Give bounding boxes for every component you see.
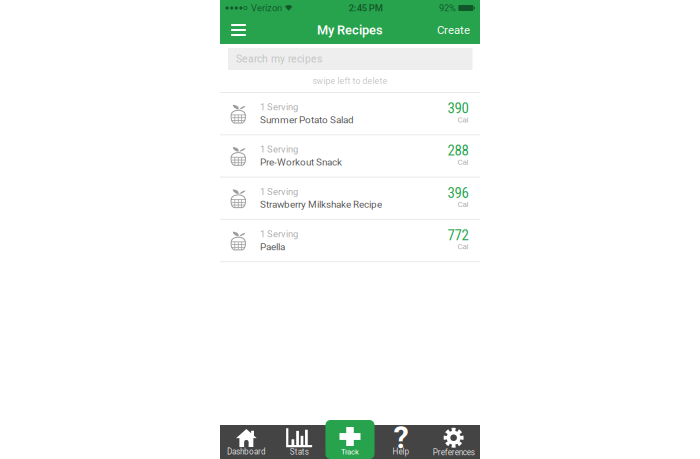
staticText: Preferences <box>433 448 475 457</box>
staticText: 772 <box>447 226 468 244</box>
button[interactable]: Preferences <box>427 425 480 459</box>
staticText: Paella <box>260 241 285 253</box>
staticText: My Recipes <box>317 22 383 37</box>
staticText: Cal <box>457 157 468 167</box>
staticText: 1 Serving <box>260 186 298 197</box>
staticText: 396 <box>447 184 468 202</box>
button[interactable]: 1 Serving <box>220 92 480 134</box>
button[interactable]: 1 Serving <box>220 219 480 261</box>
staticText: Cal <box>457 200 468 209</box>
button[interactable]: Stats <box>273 425 326 459</box>
staticText: 2:45 PM <box>349 2 383 13</box>
button[interactable]: Dashboard <box>220 425 273 459</box>
staticText: Summer Potato Salad <box>260 114 354 126</box>
staticText: Stats <box>290 447 309 457</box>
staticText: Track <box>341 447 359 456</box>
staticText: swipe left to delete <box>312 76 387 86</box>
staticText: 1 Serving <box>260 144 298 155</box>
staticText: 92% <box>439 2 456 13</box>
staticText: Search my recipes <box>236 53 322 65</box>
staticText: Verizon <box>251 2 282 13</box>
staticText: Cal <box>457 242 468 251</box>
staticText: Create <box>437 23 470 37</box>
staticText: 288 <box>447 142 468 159</box>
button[interactable]: Menu <box>220 16 256 44</box>
staticText: Cal <box>457 115 468 124</box>
staticText: Help <box>392 447 409 456</box>
staticText: 390 <box>447 99 468 117</box>
button[interactable]: Search my recipes <box>220 44 480 70</box>
staticText: Strawberry Milkshake Recipe <box>260 199 382 210</box>
button[interactable]: Track <box>325 420 374 459</box>
button[interactable]: 1 Serving <box>220 177 480 219</box>
staticText: 1 Serving <box>260 102 298 113</box>
staticText: 1 Serving <box>260 228 298 239</box>
staticText: Pre-Workout Snack <box>260 156 342 168</box>
staticText: Dashboard <box>227 447 266 456</box>
button[interactable]: Create <box>428 16 479 44</box>
staticText: ? <box>393 420 408 456</box>
button[interactable]: 1 Serving <box>220 134 480 177</box>
button[interactable]: ? <box>374 425 427 459</box>
